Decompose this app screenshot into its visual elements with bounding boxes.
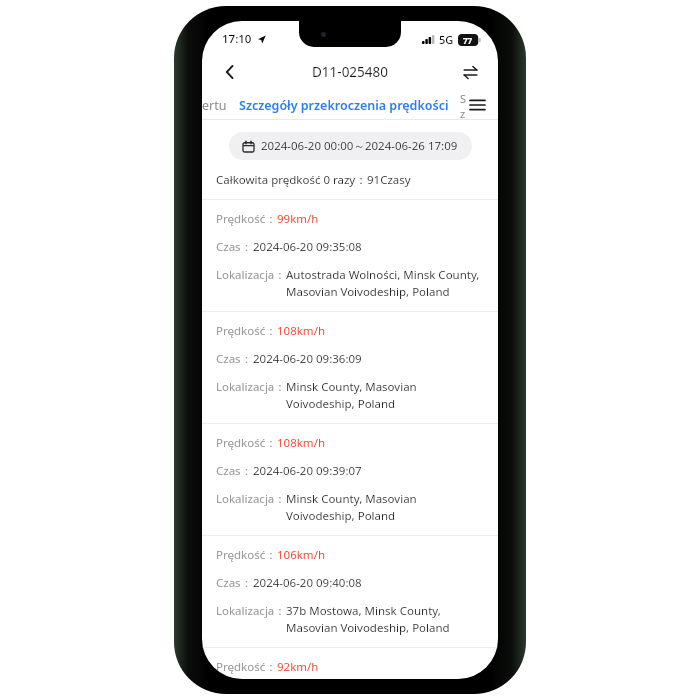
button[interactable]: Szczegóły przekroczenia prędkości: [239, 97, 449, 114]
staticText: 108km/h: [277, 435, 326, 451]
staticText: 108km/h: [277, 323, 326, 339]
staticText: Lokalizacja：: [216, 267, 286, 283]
button[interactable]: Prędkość：: [202, 648, 498, 679]
staticText: Prędkość：: [216, 435, 277, 451]
staticText: 92km/h: [277, 659, 319, 675]
staticText: Minsk County, Masovian Voivodeship, Pola…: [286, 379, 484, 412]
staticText: 2024-06-20 09:39:07: [253, 463, 362, 479]
staticText: Lokalizacja：: [216, 603, 286, 619]
button[interactable]: Back: [214, 56, 246, 88]
staticText: Prędkość：: [216, 211, 277, 227]
staticText: Prędkość：: [216, 323, 277, 339]
staticText: Szc: [460, 91, 466, 119]
staticText: Prędkość：: [216, 547, 277, 563]
staticText: 77: [463, 35, 473, 46]
button[interactable]: Prędkość：: [202, 536, 498, 647]
staticText: Autostrada Wolności, Minsk County, Masov…: [286, 267, 484, 300]
staticText: 37b Mostowa, Minsk County, Masovian Voiv…: [286, 603, 484, 636]
staticText: 5G: [439, 32, 454, 47]
button[interactable]: Swap: [454, 56, 486, 88]
staticText: Czas：: [216, 463, 253, 479]
staticText: 91Czasy: [367, 172, 411, 188]
staticText: Czas：: [216, 575, 253, 591]
staticText: 17:10: [222, 31, 252, 47]
staticText: 2024-06-20 00:00～2024-06-26 17:09: [261, 138, 458, 154]
staticText: ertu: [202, 97, 227, 114]
staticText: Minsk County, Masovian Voivodeship, Pola…: [286, 491, 484, 524]
button[interactable]: Szc: [460, 91, 466, 119]
staticText: Lokalizacja：: [216, 379, 286, 395]
staticText: 99km/h: [277, 211, 319, 227]
button[interactable]: 2024-06-20 00:00～2024-06-26 17:09: [229, 132, 472, 160]
button[interactable]: ertu: [202, 97, 227, 114]
staticText: 106km/h: [277, 547, 326, 563]
staticText: 2024-06-20 09:40:08: [253, 575, 362, 591]
staticText: Całkowita prędkość 0 razy：: [216, 172, 367, 188]
staticText: Szczegóły przekroczenia prędkości: [239, 97, 449, 114]
staticText: 2024-06-20 09:35:08: [253, 239, 362, 255]
staticText: D11-025480: [312, 63, 388, 81]
staticText: Prędkość：: [216, 659, 277, 675]
staticText: Czas：: [216, 239, 253, 255]
staticText: Lokalizacja：: [216, 491, 286, 507]
button[interactable]: Prędkość：: [202, 200, 498, 311]
button[interactable]: Prędkość：: [202, 424, 498, 535]
button[interactable]: Menu: [464, 92, 490, 118]
staticText: 2024-06-20 09:36:09: [253, 351, 362, 367]
button[interactable]: Prędkość：: [202, 312, 498, 423]
staticText: Czas：: [216, 351, 253, 367]
